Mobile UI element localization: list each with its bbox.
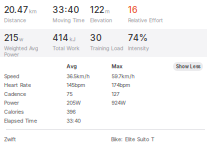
staticText: Heart Rate [4, 82, 31, 88]
staticText: 59.7km/h [111, 73, 134, 79]
staticText: w [19, 36, 23, 42]
staticText: Calories [4, 109, 24, 115]
staticText: Elevation [90, 17, 112, 23]
staticText: Power [4, 100, 19, 106]
staticText: 30 [90, 32, 102, 43]
staticText: Bike: Elite Suito T [111, 136, 154, 142]
staticText: 75 [66, 91, 72, 97]
staticText: 122 [90, 4, 104, 15]
staticText: m [105, 8, 110, 14]
staticText: 33:40 [52, 4, 79, 15]
button[interactable]: Show Less [173, 62, 203, 71]
staticText: Speed [4, 73, 19, 79]
staticText: 36.5km/h [66, 73, 89, 79]
staticText: Relative Effort [128, 17, 163, 23]
staticText: 20.47 [4, 4, 28, 15]
staticText: Cadence [4, 91, 26, 97]
staticText: kJ [69, 36, 75, 42]
staticText: Max [111, 63, 122, 69]
staticText: Avg [66, 63, 76, 69]
staticText: 396 [66, 109, 75, 115]
staticText: 215 [4, 32, 18, 43]
staticText: Weighted Avg Power [4, 45, 38, 58]
staticText: Intensity [128, 45, 149, 51]
staticText: 205W [66, 100, 80, 106]
staticText: 127 [111, 91, 119, 97]
staticText: 414 [52, 32, 68, 43]
staticText: Zwift [4, 136, 16, 142]
staticText: Distance [4, 17, 26, 23]
staticText: Show Less [176, 64, 200, 69]
staticText: 33:40 [66, 117, 80, 124]
staticText: 174bpm [111, 82, 130, 88]
staticText: Total Work [52, 45, 79, 51]
staticText: 74% [128, 32, 148, 43]
staticText: km [29, 8, 37, 14]
staticText: Training Load [90, 45, 123, 51]
staticText: 145bpm [66, 82, 85, 88]
staticText: 16 [128, 4, 138, 15]
staticText: 924W [111, 100, 125, 106]
staticText: Moving Time [52, 17, 84, 23]
staticText: Elapsed Time [4, 117, 37, 124]
